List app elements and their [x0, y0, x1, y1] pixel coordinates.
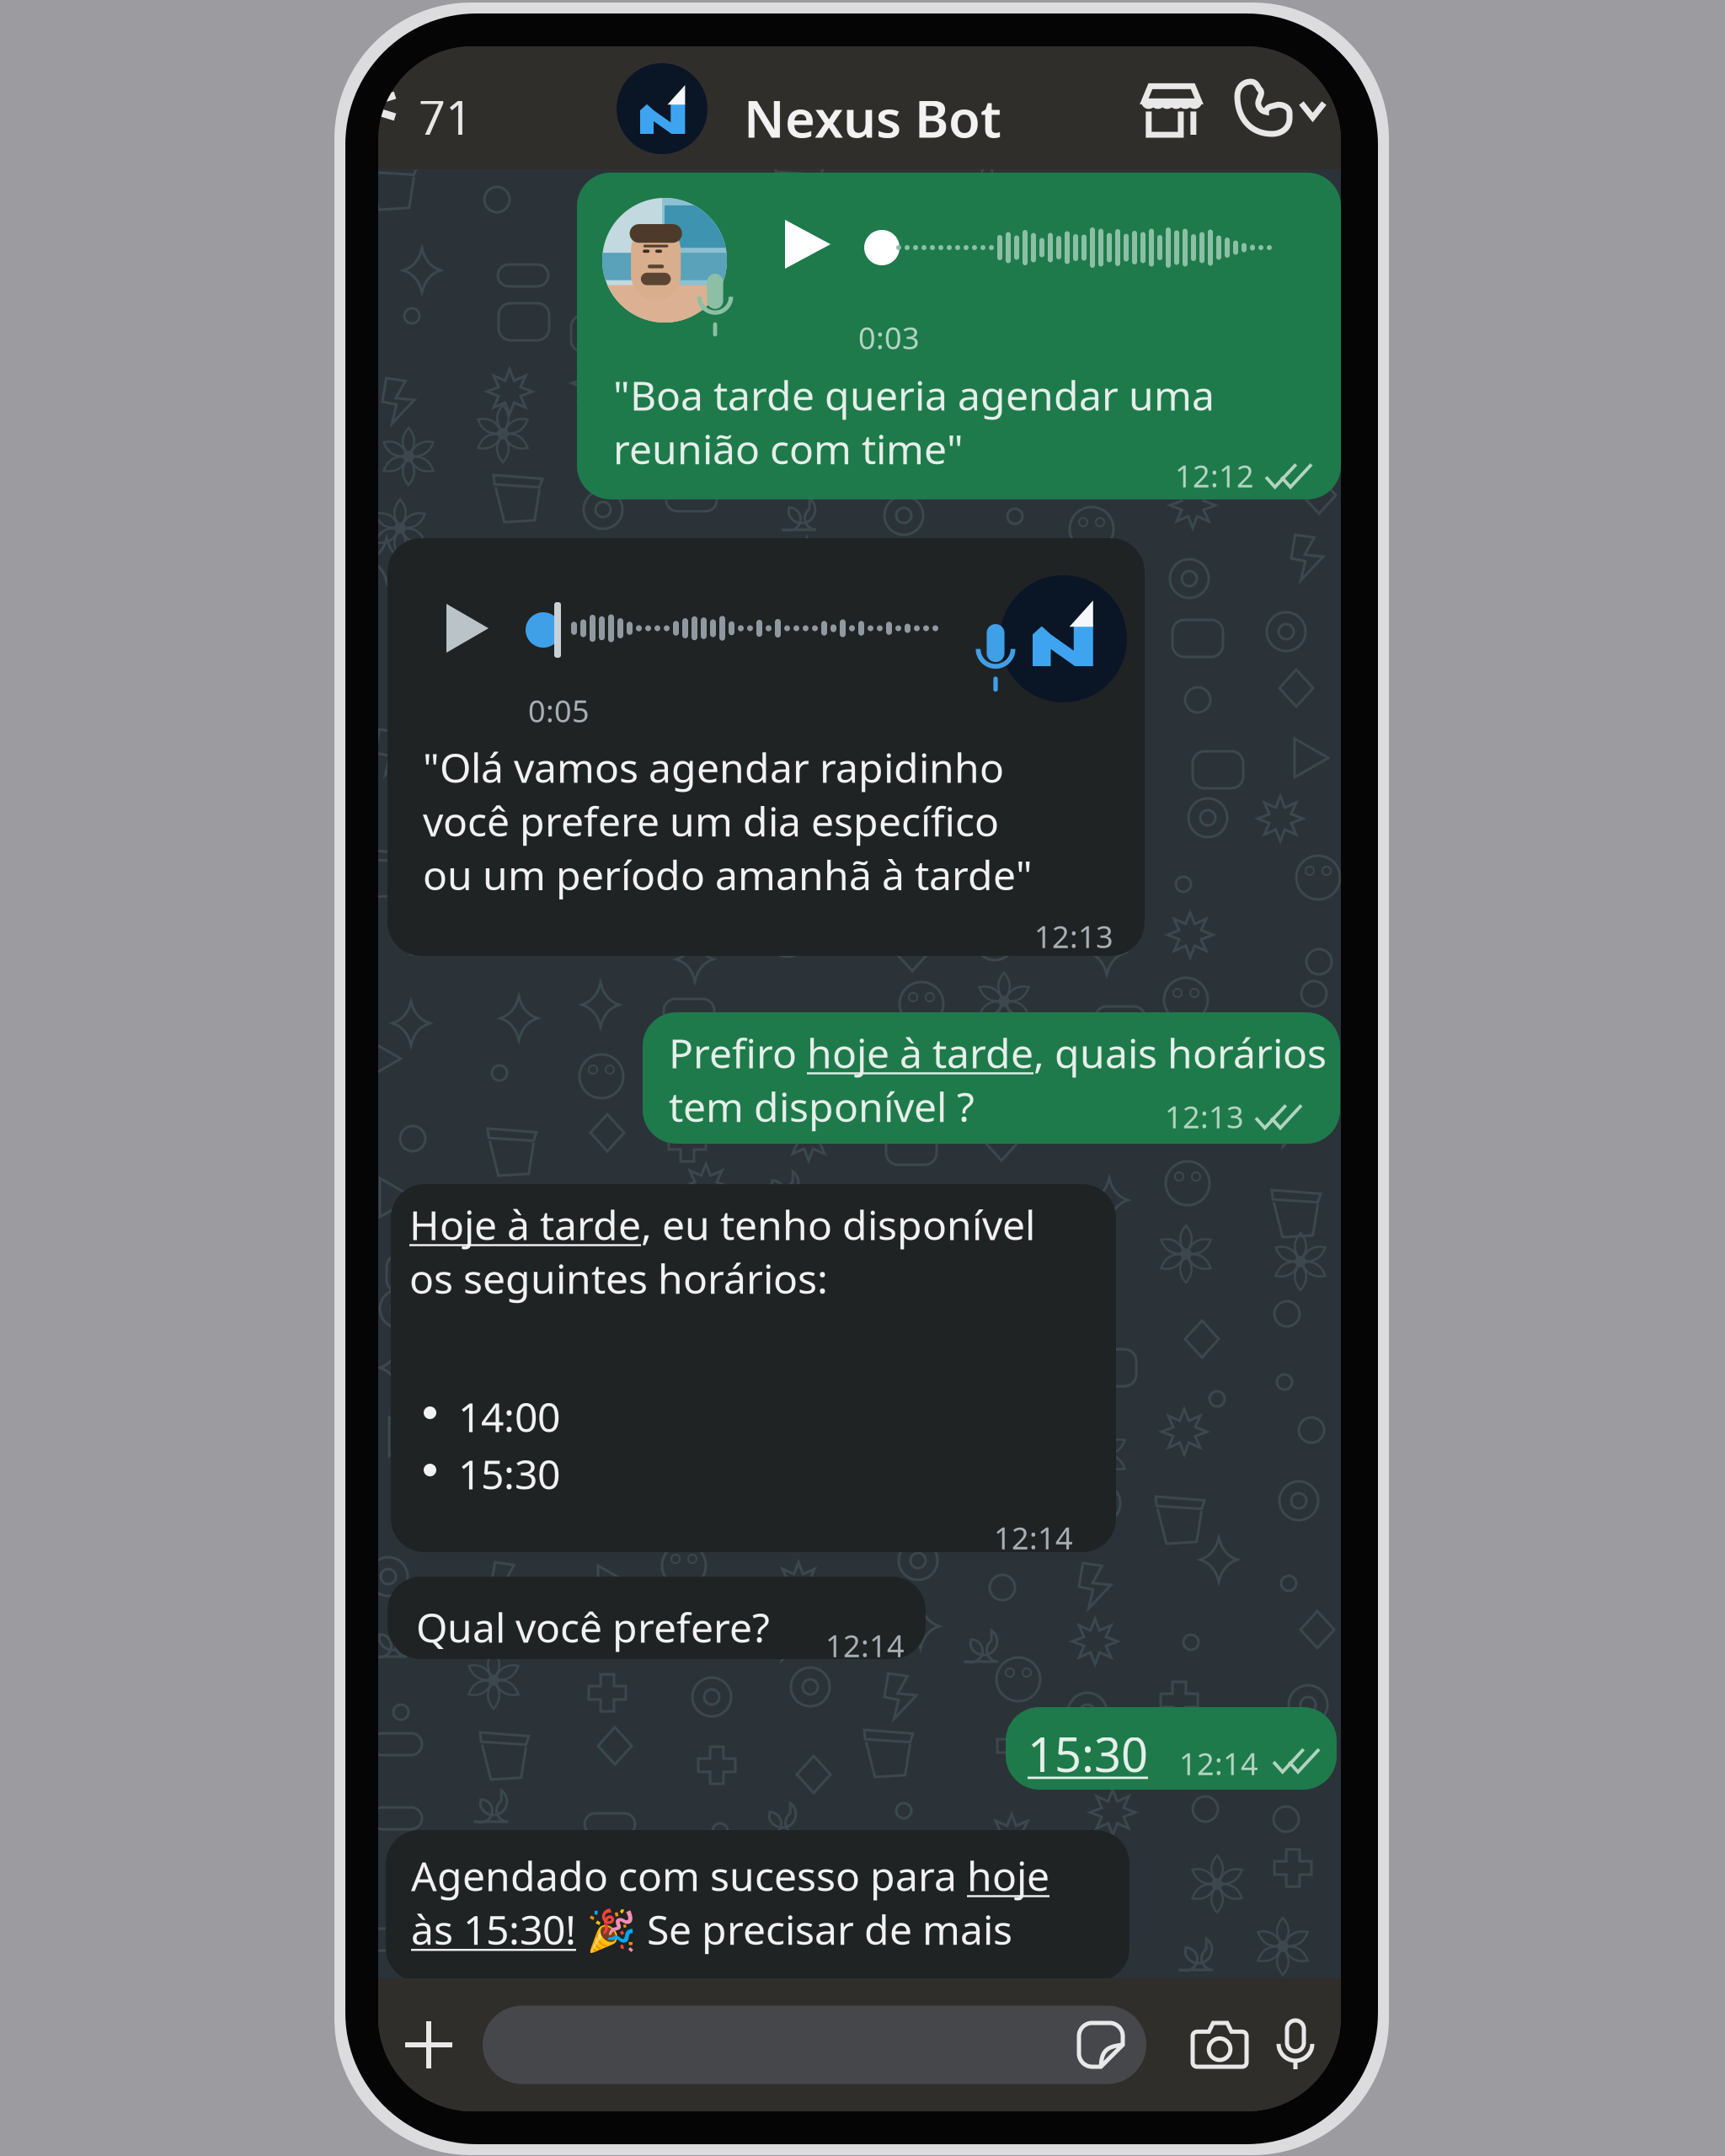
staticText: 0:05	[528, 691, 590, 731]
staticText: Hoje à tarde, eu tenho disponível os seg…	[409, 1198, 1035, 1305]
staticText: Nexus Bot	[744, 83, 1001, 152]
staticText: 14:00	[458, 1390, 560, 1443]
staticText: 0:03	[858, 318, 920, 358]
staticText: Qual você prefere?	[416, 1600, 770, 1654]
staticText: Agendado com sucesso para hoje às 15:30!…	[411, 1849, 1049, 1956]
button[interactable]: Camera	[1183, 2013, 1257, 2077]
staticText: 15:30	[1028, 1722, 1148, 1785]
staticText: "Boa tarde queria agendar uma reunião co…	[613, 368, 1215, 475]
staticText: 15:30	[458, 1447, 560, 1501]
button[interactable]: Nexus Bot	[378, 46, 900, 169]
button[interactable]: Voice message	[1268, 2010, 1322, 2079]
staticText: 12:13	[1034, 916, 1114, 957]
staticText: 12:14	[1179, 1743, 1258, 1784]
staticText: 12:14	[994, 1518, 1073, 1558]
button[interactable]	[483, 2006, 1146, 2084]
staticText: 12:13	[1165, 1097, 1244, 1137]
button[interactable]: Business catalog	[1130, 71, 1214, 148]
staticText: 12:14	[825, 1625, 905, 1666]
button[interactable]: Attach	[393, 2009, 464, 2080]
staticText: "Olá vamos agendar rapidinho você prefer…	[423, 740, 1033, 901]
button[interactable]: Call	[1226, 70, 1336, 146]
button[interactable]: Back	[378, 46, 486, 169]
staticText: 12:12	[1175, 456, 1254, 496]
staticText: 71	[419, 85, 473, 148]
staticText: Prefiro hoje à tarde, quais horários tem…	[669, 1026, 1327, 1133]
